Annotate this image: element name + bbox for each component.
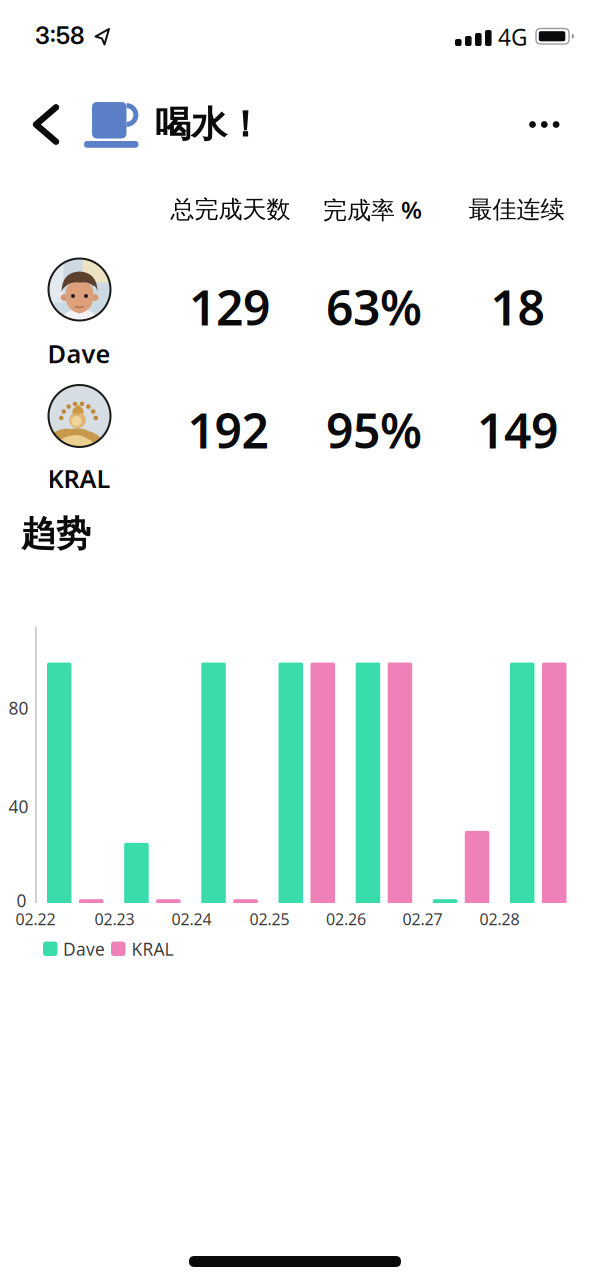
staticText: 80 xyxy=(8,696,28,719)
staticText: 趋势 xyxy=(21,513,91,555)
staticText: 02.26 xyxy=(326,908,366,930)
staticText: 02.22 xyxy=(15,908,55,930)
staticText: 最佳连续 xyxy=(468,195,564,224)
staticText: 总完成天数 xyxy=(170,195,290,224)
staticText: 40 xyxy=(8,795,28,818)
staticText: 02.27 xyxy=(402,908,442,930)
staticText: 02.25 xyxy=(249,908,289,930)
staticText: 完成率 % xyxy=(323,194,422,225)
staticText: 63% xyxy=(326,275,422,339)
staticText: 18 xyxy=(490,275,544,339)
staticText: 3:58 xyxy=(35,21,84,50)
staticText: KRAL xyxy=(131,937,173,960)
staticText: 喝水！ xyxy=(155,102,263,147)
staticText: 95% xyxy=(326,398,422,462)
staticText: 0 xyxy=(16,889,26,912)
staticText: 149 xyxy=(477,398,558,462)
staticText: 02.24 xyxy=(171,908,211,930)
staticText: 02.23 xyxy=(94,908,134,930)
button[interactable]: More xyxy=(525,102,563,146)
staticText: 4G xyxy=(498,22,528,52)
button[interactable]: Back xyxy=(22,102,70,146)
staticText: 02.28 xyxy=(479,908,519,930)
staticText: 129 xyxy=(189,275,270,339)
staticText: Dave xyxy=(63,937,105,960)
staticText: KRAL xyxy=(47,462,110,495)
staticText: Dave xyxy=(47,337,110,370)
staticText: 192 xyxy=(187,398,268,462)
